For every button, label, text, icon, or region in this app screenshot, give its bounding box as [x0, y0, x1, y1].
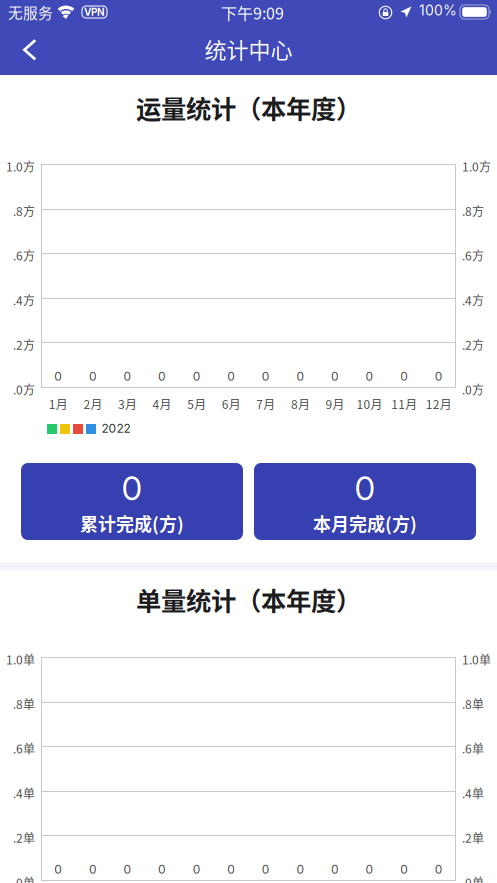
staticText: .8方: [462, 202, 484, 219]
staticText: .8方: [13, 202, 35, 219]
staticText: 0: [227, 862, 235, 876]
staticText: 1月: [49, 395, 68, 412]
staticText: .4方: [462, 291, 484, 309]
button[interactable]: 0: [254, 463, 476, 540]
staticText: 100%: [419, 2, 457, 19]
staticText: 运量统计（本年度）: [136, 89, 361, 126]
staticText: 无服务: [8, 1, 53, 23]
staticText: 0: [227, 369, 235, 383]
staticText: 2月: [83, 395, 102, 412]
staticText: 9月: [325, 395, 344, 412]
staticText: 10月: [356, 395, 382, 412]
staticText: 累计完成(方): [80, 510, 184, 536]
staticText: .0单: [462, 873, 484, 883]
staticText: 0: [123, 862, 131, 876]
staticText: 0: [262, 862, 270, 876]
staticText: 0: [400, 369, 408, 383]
staticText: VPN: [84, 6, 105, 18]
staticText: 1.0方: [462, 157, 491, 175]
staticText: .4单: [13, 784, 35, 802]
staticText: 0: [193, 369, 201, 383]
staticText: 0: [435, 862, 443, 876]
staticText: 0: [331, 369, 339, 383]
staticText: .2方: [13, 336, 35, 353]
staticText: 7月: [256, 395, 275, 412]
staticText: .0单: [13, 873, 35, 883]
staticText: 1.0单: [6, 650, 35, 668]
staticText: 3月: [118, 395, 137, 412]
staticText: .6方: [13, 247, 35, 264]
staticText: 4月: [152, 395, 171, 412]
button[interactable]: 0: [21, 463, 243, 540]
staticText: 0: [89, 369, 97, 383]
staticText: 0: [365, 369, 373, 383]
staticText: 0: [262, 369, 270, 383]
staticText: .6方: [462, 247, 484, 264]
staticText: 下午9:09: [221, 1, 284, 24]
staticText: 0: [193, 862, 201, 876]
staticText: 0: [400, 862, 408, 876]
staticText: 0: [54, 862, 62, 876]
staticText: 0: [158, 862, 166, 876]
staticText: 0: [365, 862, 373, 876]
button[interactable]: 返回: [0, 26, 57, 75]
staticText: 0: [296, 369, 304, 383]
staticText: .0方: [462, 380, 484, 398]
staticText: 本月完成(方): [313, 510, 417, 536]
staticText: 8月: [291, 395, 310, 412]
staticText: 12月: [426, 395, 452, 412]
staticText: 统计中心: [204, 33, 292, 65]
staticText: .0方: [13, 380, 35, 398]
staticText: 0: [331, 862, 339, 876]
staticText: .2方: [462, 336, 484, 353]
staticText: 0: [123, 369, 131, 383]
staticText: .6单: [13, 740, 35, 757]
staticText: .4单: [462, 784, 484, 802]
staticText: 0: [89, 862, 97, 876]
staticText: .2单: [13, 829, 35, 846]
staticText: .8单: [462, 695, 484, 712]
staticText: 0: [158, 369, 166, 383]
staticText: .2单: [462, 829, 484, 846]
staticText: 11月: [391, 395, 417, 412]
staticText: 0: [54, 369, 62, 383]
staticText: 0: [354, 468, 375, 508]
staticText: 5月: [187, 395, 206, 412]
staticText: .4方: [13, 291, 35, 309]
staticText: 0: [435, 369, 443, 383]
staticText: 1.0单: [462, 650, 491, 668]
staticText: .8单: [13, 695, 35, 712]
staticText: 单量统计（本年度）: [136, 581, 361, 618]
staticText: 0: [121, 468, 142, 508]
staticText: 2022: [101, 421, 130, 435]
staticText: 0: [296, 862, 304, 876]
staticText: .6单: [462, 740, 484, 757]
staticText: 6月: [222, 395, 241, 412]
staticText: 1.0方: [6, 157, 35, 175]
